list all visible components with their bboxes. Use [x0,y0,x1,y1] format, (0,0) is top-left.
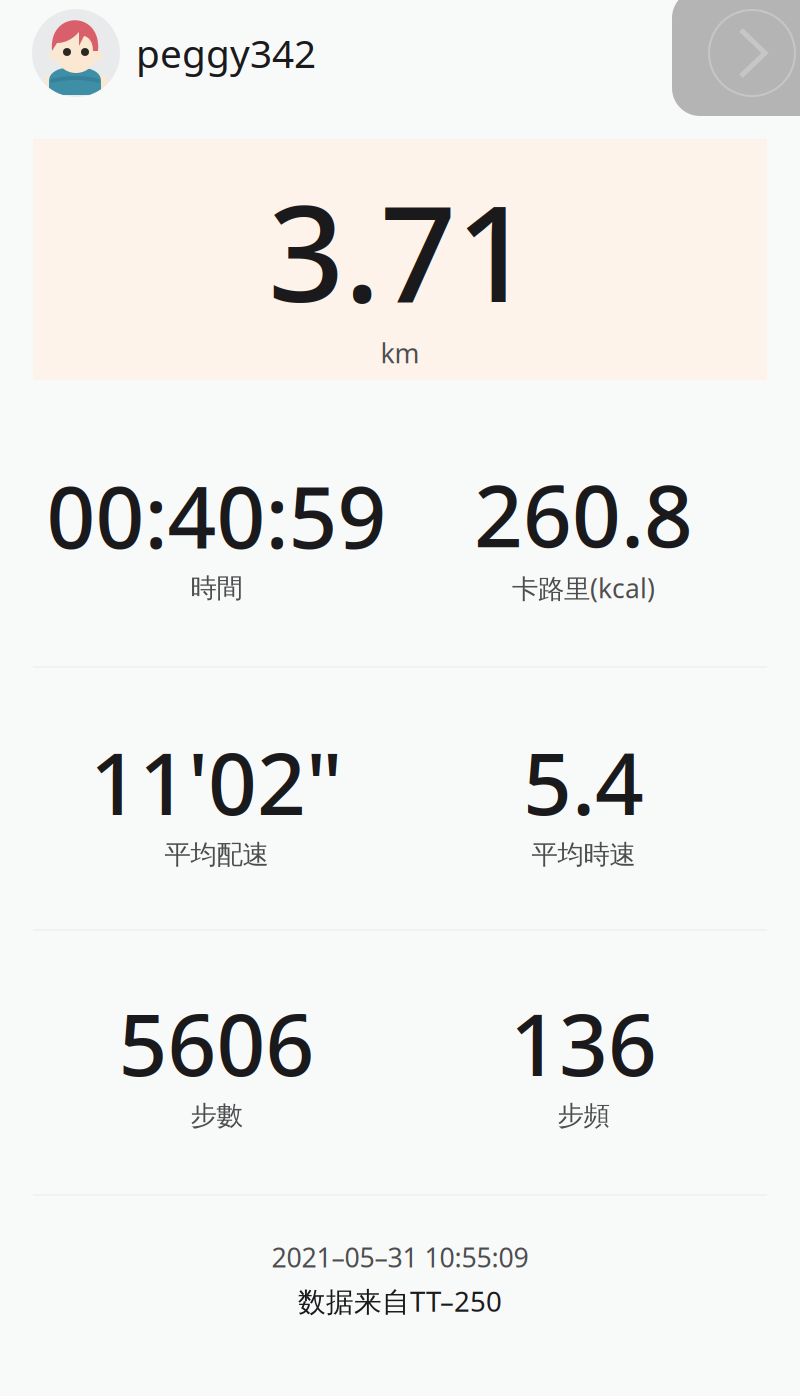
staticText: 平均配速 [164,838,268,871]
staticText: km [380,335,419,371]
staticText: 11'02" [90,724,343,840]
staticText: peggy342 [136,27,316,79]
staticText: 数据来自TT–250 [298,1282,502,1320]
staticText: 步數 [190,1099,242,1132]
staticText: 3.71 [268,159,532,341]
button[interactable]: Share [672,0,800,116]
staticText: 時間 [190,571,242,605]
staticText: 5606 [118,985,314,1101]
staticText: 136 [510,985,657,1101]
staticText: 260.8 [474,456,693,572]
staticText: 平均時速 [531,838,635,871]
staticText: 2021–05–31 10:55:09 [271,1239,528,1275]
staticText: 5.4 [523,724,644,840]
staticText: 卡路里(kcal) [512,570,655,606]
staticText: 步頻 [557,1099,609,1132]
staticText: 00:40:59 [46,457,386,573]
